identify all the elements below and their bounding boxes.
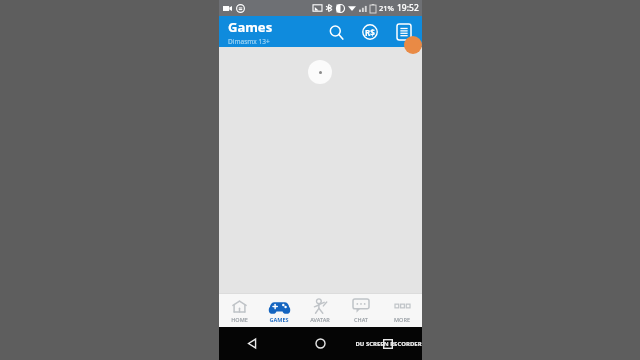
button[interactable]: GAMES bbox=[259, 294, 299, 327]
staticText: DU SCREEN RECORDER bbox=[355, 340, 422, 348]
staticText: Games bbox=[228, 18, 273, 36]
button[interactable]: AVATAR bbox=[299, 294, 340, 327]
staticText: AVATAR bbox=[310, 316, 330, 323]
staticText: 19:52 bbox=[397, 2, 419, 14]
button[interactable]: MORE bbox=[381, 294, 422, 327]
other: Screen recorder bbox=[404, 36, 422, 54]
button[interactable]: Robux bbox=[358, 20, 382, 44]
staticText: CHAT bbox=[354, 316, 368, 323]
button[interactable]: HOME bbox=[219, 294, 259, 327]
staticText: HOME bbox=[231, 316, 248, 323]
button[interactable]: Search bbox=[324, 20, 348, 44]
button[interactable]: Recent apps bbox=[354, 327, 422, 360]
staticText: Dimasmx 13+ bbox=[228, 37, 270, 46]
staticText: R$ bbox=[365, 27, 375, 38]
button[interactable]: Menu bbox=[392, 20, 416, 44]
button[interactable]: CHAT bbox=[340, 294, 381, 327]
button[interactable]: Home bbox=[286, 327, 354, 360]
staticText: GAMES bbox=[269, 316, 289, 323]
staticText: MORE bbox=[394, 316, 410, 323]
button[interactable]: Back bbox=[219, 327, 286, 360]
staticText: 21% bbox=[379, 3, 394, 13]
